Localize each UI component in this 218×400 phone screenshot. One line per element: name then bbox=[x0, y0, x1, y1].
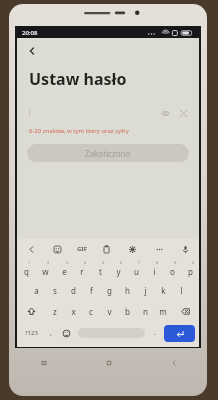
staticText: g bbox=[107, 285, 112, 296]
staticText: , bbox=[50, 328, 52, 338]
button[interactable]: 2 bbox=[36, 259, 55, 280]
staticText: GIF bbox=[77, 245, 87, 253]
button[interactable]: Show password bbox=[29, 106, 189, 120]
staticText: o bbox=[170, 266, 175, 277]
button[interactable]: j bbox=[136, 280, 154, 301]
button[interactable]: b bbox=[118, 301, 136, 322]
button[interactable]: Clear bbox=[177, 107, 189, 119]
button[interactable]: 4 bbox=[73, 259, 91, 280]
staticText: y bbox=[116, 266, 121, 277]
button[interactable]: 1 bbox=[17, 259, 36, 280]
button[interactable]: Clipboard bbox=[99, 242, 113, 256]
staticText: t bbox=[99, 266, 102, 277]
button[interactable]: l bbox=[172, 280, 190, 301]
button[interactable]: Back bbox=[23, 42, 41, 60]
button[interactable]: s bbox=[46, 280, 64, 301]
button[interactable]: 9 bbox=[163, 259, 181, 280]
staticText: l bbox=[180, 285, 183, 296]
button[interactable]: Collapse bbox=[24, 242, 38, 256]
staticText: p bbox=[188, 266, 193, 277]
button[interactable]: Backspace bbox=[172, 301, 199, 322]
button[interactable]: More bbox=[152, 242, 166, 256]
staticText: ?123 bbox=[25, 329, 38, 337]
staticText: Zakończono bbox=[85, 148, 131, 159]
button[interactable]: Home bbox=[101, 355, 117, 371]
button[interactable]: c bbox=[82, 301, 100, 322]
button[interactable]: 5 bbox=[91, 259, 109, 280]
button[interactable]: k bbox=[154, 280, 172, 301]
button[interactable]: Stickers bbox=[50, 242, 64, 256]
staticText: w bbox=[42, 266, 49, 277]
button[interactable]: x bbox=[64, 301, 82, 322]
staticText: q bbox=[24, 266, 29, 277]
staticText: 9 bbox=[174, 260, 177, 265]
button[interactable]: d bbox=[64, 280, 82, 301]
staticText: 2 bbox=[47, 260, 50, 265]
staticText: 8 bbox=[156, 260, 159, 265]
staticText: b bbox=[125, 306, 130, 317]
staticText: v bbox=[107, 306, 112, 317]
staticText: 0 bbox=[192, 260, 195, 265]
button[interactable]: Back bbox=[166, 355, 182, 371]
staticText: f bbox=[90, 285, 93, 296]
button[interactable]: ?123 bbox=[19, 322, 44, 344]
button[interactable]: GIF bbox=[77, 245, 87, 253]
staticText: 6 bbox=[120, 260, 123, 265]
button[interactable]: Enter bbox=[164, 325, 195, 342]
button[interactable]: 3 bbox=[55, 259, 73, 280]
staticText: 4 bbox=[84, 260, 87, 265]
staticText: Ustaw hasło bbox=[29, 68, 127, 90]
button[interactable]: Shift bbox=[17, 301, 45, 322]
button[interactable]: m bbox=[154, 301, 172, 322]
button[interactable]: a bbox=[27, 280, 46, 301]
staticText: j bbox=[144, 285, 147, 296]
button[interactable]: Recents bbox=[36, 355, 52, 371]
button[interactable]: 7 bbox=[127, 259, 145, 280]
staticText: u bbox=[134, 266, 139, 277]
button[interactable]: 8 bbox=[145, 259, 163, 280]
staticText: a bbox=[34, 285, 39, 296]
button[interactable]: h bbox=[118, 280, 136, 301]
staticText: e bbox=[62, 266, 67, 277]
staticText: i bbox=[153, 266, 156, 277]
staticText: . bbox=[154, 328, 156, 338]
button[interactable]: g bbox=[100, 280, 118, 301]
staticText: 3 bbox=[66, 260, 69, 265]
button[interactable]: 0 bbox=[181, 259, 199, 280]
button[interactable]: f bbox=[82, 280, 100, 301]
button[interactable]: Voice input bbox=[178, 242, 192, 256]
staticText: c bbox=[89, 306, 93, 317]
staticText: x bbox=[71, 306, 76, 317]
staticText: m bbox=[159, 306, 167, 317]
button[interactable]: Settings bbox=[125, 242, 139, 256]
button[interactable]: 6 bbox=[109, 259, 127, 280]
staticText: 5 bbox=[102, 260, 105, 265]
staticText: d bbox=[71, 285, 76, 296]
button[interactable]: Show password bbox=[159, 107, 171, 119]
staticText: 6-20 znaków, w tym litery oraz cyfry bbox=[29, 127, 129, 135]
staticText: h bbox=[125, 285, 130, 296]
staticText: k bbox=[161, 285, 166, 296]
button[interactable]: z bbox=[45, 301, 64, 322]
staticText: z bbox=[53, 306, 57, 317]
staticText: 7 bbox=[138, 260, 141, 265]
button[interactable]: Zakończono bbox=[27, 144, 189, 162]
button[interactable]: v bbox=[100, 301, 118, 322]
button[interactable]: Comma bbox=[44, 322, 58, 344]
staticText: n bbox=[143, 306, 148, 317]
staticText: 1 bbox=[28, 260, 31, 265]
button[interactable]: Emoji bbox=[58, 322, 75, 344]
staticText: s bbox=[53, 285, 57, 296]
staticText: r bbox=[80, 266, 84, 277]
button[interactable]: n bbox=[136, 301, 154, 322]
button[interactable]: Period bbox=[148, 322, 162, 344]
staticText: 20:08 bbox=[22, 29, 38, 37]
